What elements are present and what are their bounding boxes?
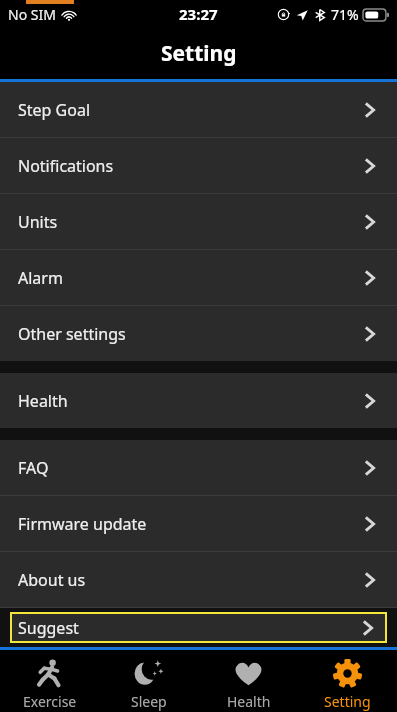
- button[interactable]: About us: [0, 552, 397, 607]
- button[interactable]: Notifications: [0, 138, 397, 193]
- button[interactable]: Step Goal: [0, 82, 397, 137]
- staticText: Units: [18, 211, 58, 233]
- button[interactable]: Health: [0, 373, 397, 428]
- staticText: Other settings: [18, 323, 126, 345]
- staticText: Setting: [324, 692, 371, 711]
- staticText: Setting: [161, 39, 237, 68]
- button[interactable]: Exercise: [0, 650, 99, 712]
- button[interactable]: Units: [0, 194, 397, 249]
- button[interactable]: Firmware update: [0, 496, 397, 551]
- staticText: Suggest: [18, 617, 79, 639]
- staticText: Health: [227, 692, 271, 711]
- button[interactable]: Health: [199, 650, 298, 712]
- button[interactable]: FAQ: [0, 440, 397, 495]
- staticText: 71%: [331, 5, 359, 24]
- staticText: Exercise: [23, 692, 77, 711]
- staticText: Sleep: [131, 692, 167, 711]
- button[interactable]: Suggest: [0, 608, 397, 647]
- staticText: Alarm: [18, 267, 63, 289]
- button[interactable]: Setting: [298, 650, 397, 712]
- staticText: Notifications: [18, 155, 114, 177]
- staticText: FAQ: [18, 457, 49, 479]
- staticText: No SIM: [8, 5, 56, 24]
- staticText: 23:27: [179, 4, 218, 24]
- button[interactable]: Sleep: [99, 650, 198, 712]
- staticText: About us: [18, 569, 86, 591]
- button[interactable]: Alarm: [0, 250, 397, 305]
- button[interactable]: Other settings: [0, 306, 397, 361]
- staticText: Firmware update: [18, 513, 147, 535]
- staticText: Step Goal: [18, 99, 91, 121]
- staticText: Health: [18, 390, 68, 412]
